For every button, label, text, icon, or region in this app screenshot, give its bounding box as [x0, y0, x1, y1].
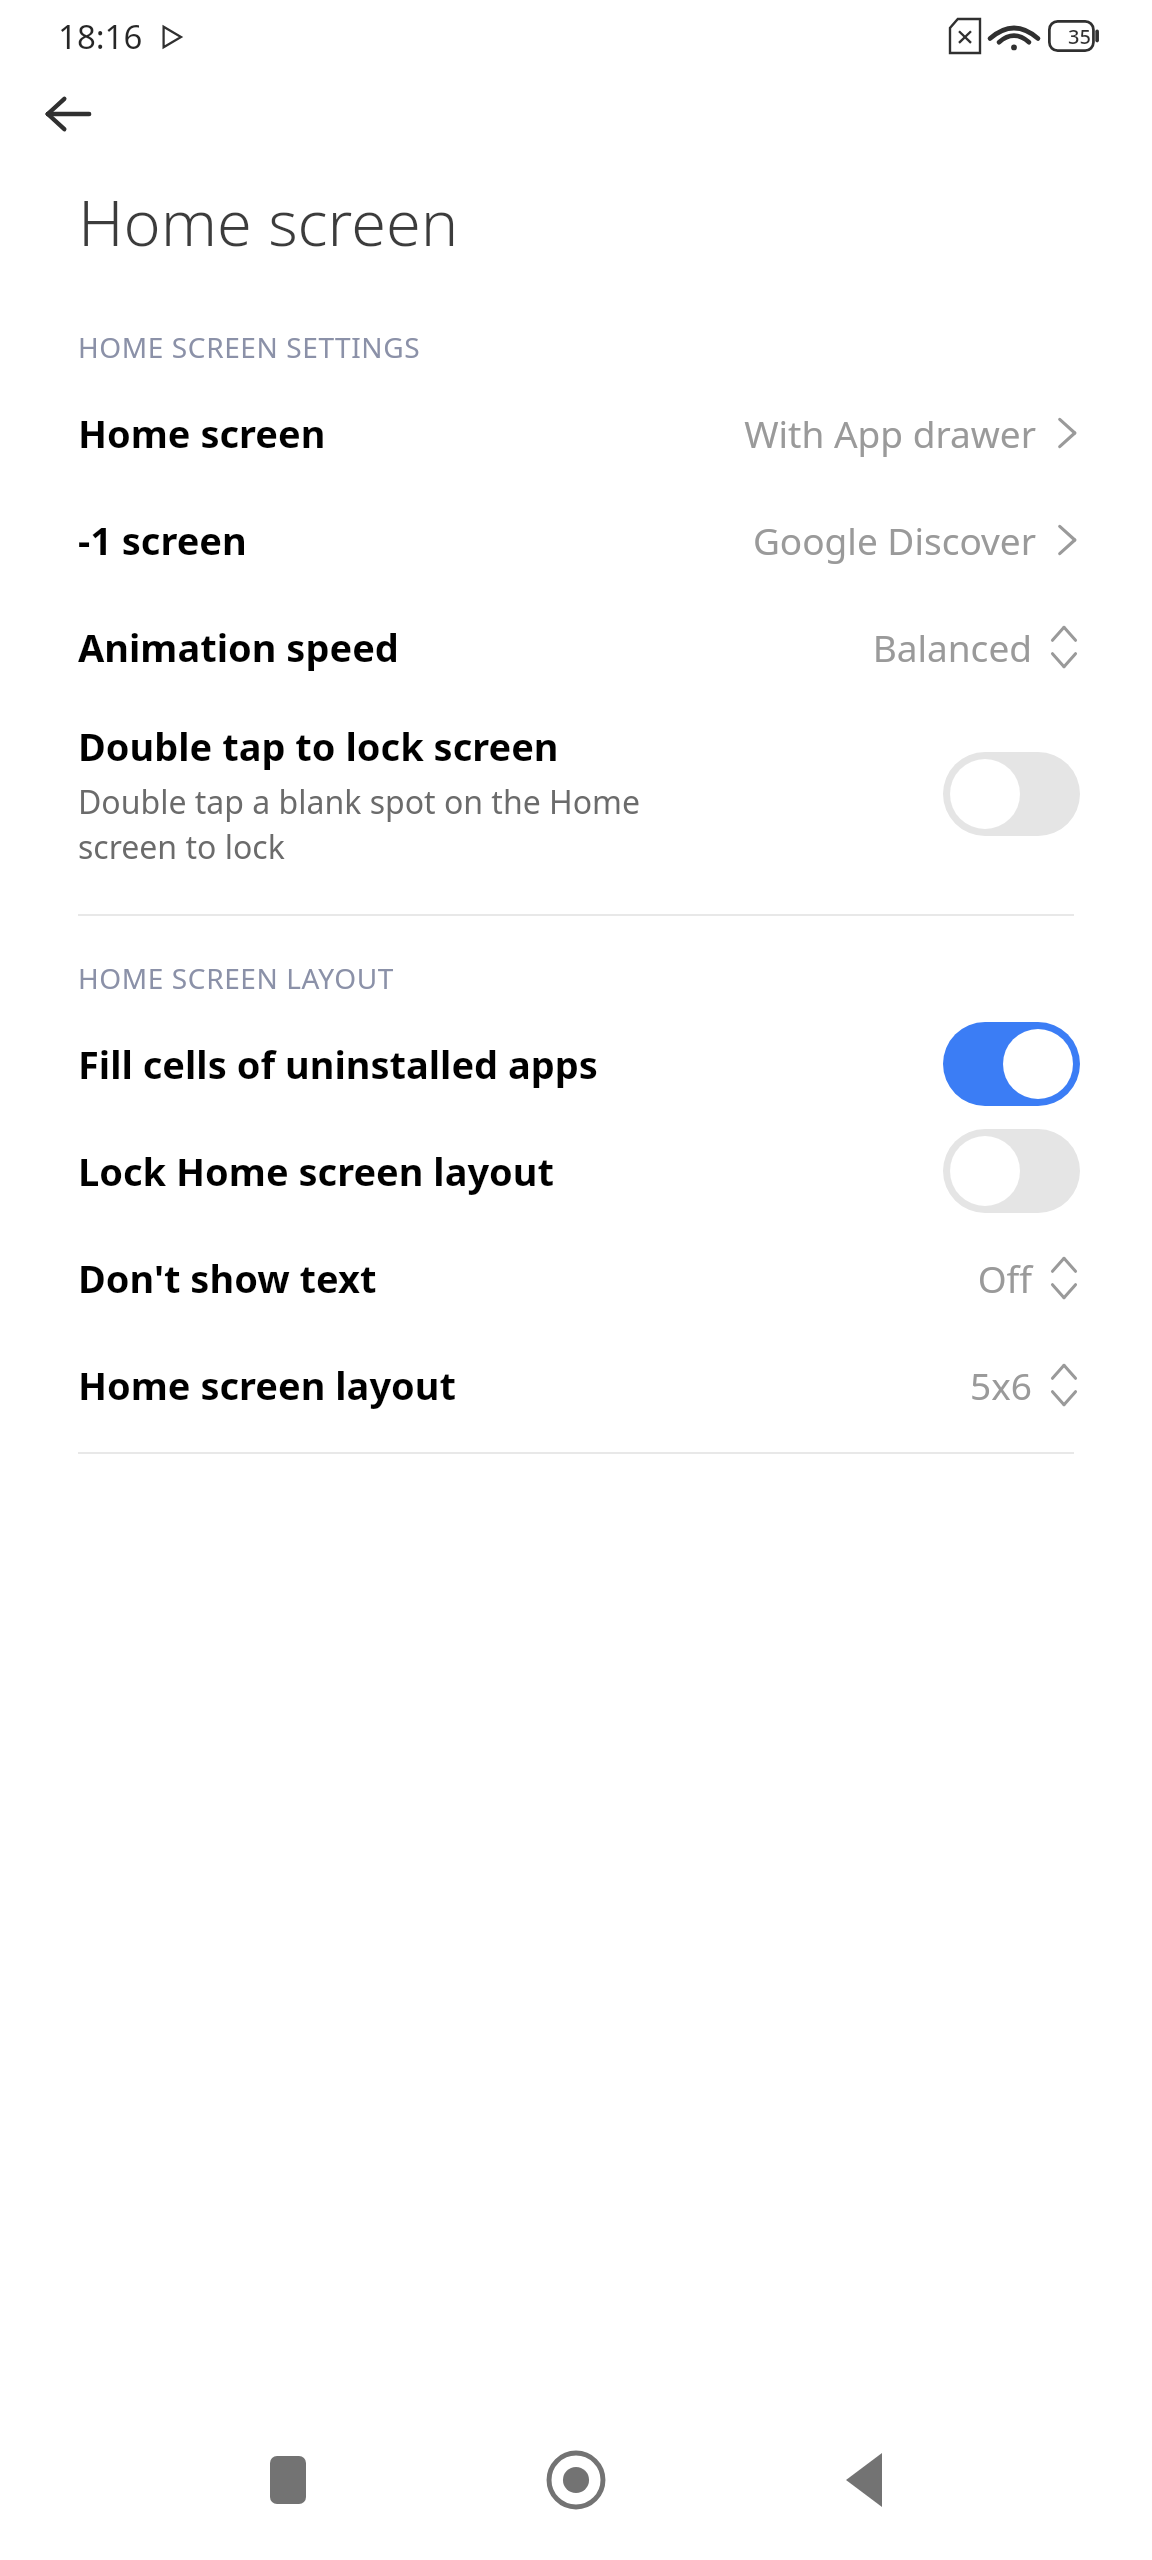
staticText: Lock Home screen layout [78, 1145, 555, 1197]
button[interactable]: Toggle off [943, 1129, 1080, 1213]
button[interactable]: Lock Home screen layout [0, 1117, 1152, 1224]
staticText: Balanced [872, 622, 1032, 672]
button[interactable]: Home [528, 2432, 624, 2528]
staticText: 5x6 [970, 1360, 1032, 1410]
button[interactable]: Double tap to lock screen [0, 700, 1152, 888]
button[interactable]: Toggle on [943, 1022, 1080, 1106]
staticText: Off [977, 1253, 1032, 1303]
button[interactable]: Toggle off [943, 752, 1080, 836]
button[interactable]: -1 screen [0, 486, 1152, 593]
staticText: Home screen [78, 407, 326, 459]
button[interactable]: Home screen layout [0, 1331, 1152, 1438]
button[interactable]: Back [816, 2432, 912, 2528]
staticText: 35 [1068, 23, 1091, 50]
staticText: HOME SCREEN LAYOUT [78, 959, 394, 997]
staticText: Double tap a blank spot on the Home scre… [78, 780, 641, 868]
button[interactable]: Recents [240, 2432, 336, 2528]
staticText: 18:16 [58, 14, 143, 59]
staticText: -1 screen [78, 514, 247, 566]
button[interactable]: Animation speed [0, 593, 1152, 700]
button[interactable]: Don't show text [0, 1224, 1152, 1331]
button[interactable]: Fill cells of uninstalled apps [0, 1010, 1152, 1117]
staticText: Double tap to lock screen [78, 720, 559, 772]
staticText: Google Discover [752, 515, 1036, 565]
staticText: Animation speed [78, 621, 399, 673]
staticText: Don't show text [78, 1252, 377, 1304]
staticText: Home screen layout [78, 1359, 457, 1411]
staticText: With App drawer [744, 408, 1036, 458]
button[interactable]: Back [24, 72, 112, 156]
staticText: Home screen [78, 179, 459, 265]
staticText: HOME SCREEN SETTINGS [78, 328, 421, 366]
button[interactable]: Home screen [0, 379, 1152, 486]
staticText: Fill cells of uninstalled apps [78, 1038, 598, 1090]
